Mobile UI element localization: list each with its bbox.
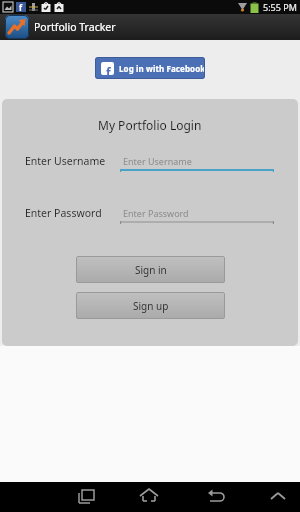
- staticText: Enter Username: [25, 154, 106, 168]
- staticText: Sign in: [135, 263, 167, 277]
- button[interactable]: f: [95, 57, 205, 79]
- staticText: Log in with Facebook: [119, 63, 205, 74]
- staticText: Enter Password: [123, 207, 189, 219]
- button[interactable]: Sign in: [76, 256, 225, 283]
- staticText: Enter Username: [123, 155, 192, 167]
- staticText: Enter Password: [25, 206, 102, 220]
- button[interactable]: [78, 488, 96, 506]
- staticText: f: [106, 64, 111, 75]
- button[interactable]: Enter Username: [120, 152, 274, 173]
- staticText: Portfolio Tracker: [34, 20, 116, 34]
- staticText: Sign up: [133, 299, 169, 313]
- staticText: My Portfolio Login: [98, 117, 202, 133]
- staticText: 5:55 PM: [263, 1, 297, 13]
- button[interactable]: [206, 487, 226, 507]
- button[interactable]: Enter Password: [120, 204, 274, 225]
- staticText: f: [19, 2, 23, 12]
- button[interactable]: [139, 487, 159, 507]
- button[interactable]: Sign up: [76, 292, 225, 319]
- button[interactable]: [269, 488, 287, 506]
